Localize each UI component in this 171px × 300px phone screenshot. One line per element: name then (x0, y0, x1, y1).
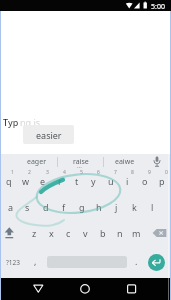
staticText: g (79, 201, 85, 213)
button[interactable]: d (37, 199, 54, 215)
button[interactable]: o (136, 173, 153, 189)
staticText: l (151, 201, 154, 213)
staticText: raise (73, 157, 89, 167)
staticText: Typ (3, 116, 19, 128)
staticText: x (49, 227, 54, 239)
staticText: j (115, 201, 118, 213)
staticText: . (135, 255, 138, 267)
staticText: h (96, 201, 102, 213)
staticText: s (25, 201, 30, 213)
button[interactable]: i (119, 173, 136, 189)
staticText: ng is (20, 116, 41, 128)
button[interactable]: e (34, 173, 51, 189)
staticText: 7 (114, 169, 117, 176)
button[interactable] (150, 225, 170, 241)
staticText: r (58, 175, 62, 187)
staticText: i (126, 175, 129, 187)
staticText: d (43, 201, 49, 213)
staticText: z (32, 227, 37, 239)
button[interactable]: u (102, 173, 119, 189)
button[interactable]: w (17, 173, 34, 189)
button[interactable] (26, 278, 50, 300)
button[interactable]: x (43, 225, 60, 241)
staticText: w (22, 175, 30, 187)
staticText: 2 (28, 169, 31, 176)
button[interactable]: h (90, 199, 107, 215)
staticText: 6 (97, 169, 100, 176)
staticText: o (142, 175, 148, 187)
staticText: 9 (148, 169, 151, 176)
staticText: n (117, 227, 123, 239)
button[interactable]: , (27, 253, 44, 269)
staticText: 0 (165, 169, 168, 176)
staticText: 3 (46, 169, 49, 176)
staticText: y (91, 175, 96, 187)
staticText: b (100, 227, 106, 239)
staticText: m (132, 227, 141, 239)
button[interactable]: t (68, 173, 85, 189)
button[interactable] (73, 278, 97, 300)
staticText: easier (36, 129, 62, 141)
staticText: ?123 (6, 258, 20, 267)
button[interactable]: a (2, 199, 19, 215)
button[interactable]: . (128, 253, 145, 269)
staticText: k (132, 201, 137, 213)
button[interactable]: r (51, 173, 68, 189)
button[interactable]: q (0, 173, 17, 189)
staticText: v (83, 227, 88, 239)
button[interactable]: m (128, 225, 145, 241)
button[interactable]: eager (14, 154, 59, 169)
button[interactable]: n (111, 225, 128, 241)
button[interactable]: eaiwe (104, 154, 146, 169)
staticText: f (62, 201, 66, 213)
staticText: 8 (131, 169, 134, 176)
button[interactable]: raise (58, 154, 103, 169)
button[interactable]: k (126, 199, 143, 215)
button[interactable] (148, 254, 165, 271)
button[interactable] (150, 155, 164, 169)
button[interactable]: easier (23, 125, 74, 144)
button[interactable]: j (108, 199, 125, 215)
button[interactable] (2, 225, 17, 241)
button[interactable]: z (26, 225, 43, 241)
staticText: q (6, 175, 12, 187)
button[interactable]: c (60, 225, 77, 241)
staticText: 5 (80, 169, 83, 176)
button[interactable] (120, 278, 144, 300)
button[interactable]: l (144, 199, 161, 215)
button[interactable]: s (19, 199, 36, 215)
staticText: a (8, 201, 14, 213)
button[interactable]: f (55, 199, 72, 215)
staticText: p (159, 175, 165, 187)
button[interactable]: g (73, 199, 90, 215)
button[interactable]: b (94, 225, 111, 241)
staticText: u (108, 175, 114, 187)
staticText: t (75, 175, 79, 187)
staticText: eaiwe (115, 157, 135, 167)
button[interactable]: v (77, 225, 94, 241)
staticText: 1 (11, 169, 14, 176)
staticText: e (40, 175, 46, 187)
staticText: eager (27, 157, 47, 167)
staticText: , (34, 255, 37, 267)
button[interactable]: ?123 (2, 254, 24, 270)
staticText: 5:00 (151, 2, 165, 12)
staticText: c (66, 227, 71, 239)
button[interactable]: p (153, 173, 170, 189)
staticText: ... (77, 162, 82, 170)
staticText: 4 (63, 169, 66, 176)
button[interactable]: y (85, 173, 102, 189)
